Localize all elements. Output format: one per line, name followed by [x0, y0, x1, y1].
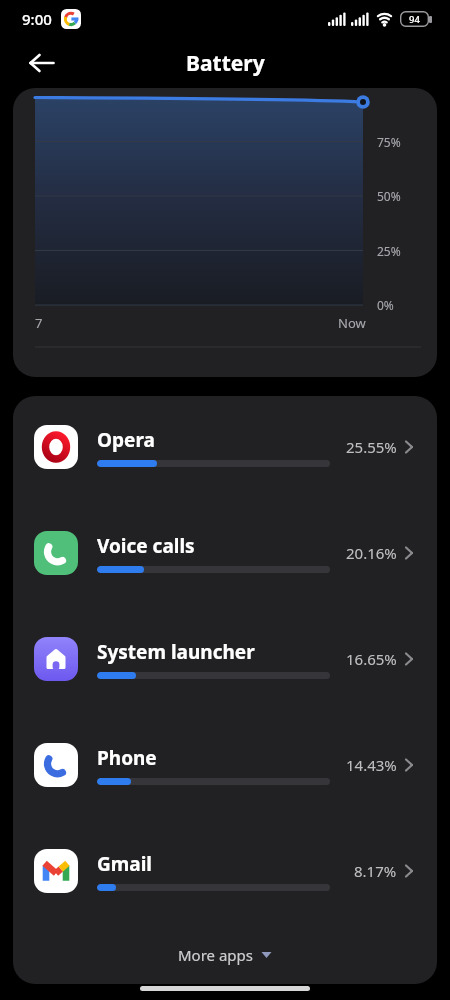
button[interactable]: More apps — [13, 926, 437, 984]
staticText: Voice calls — [97, 533, 195, 559]
button[interactable]: Phone — [13, 714, 437, 820]
staticText: Phone — [97, 745, 157, 771]
staticText: Now — [338, 314, 366, 332]
staticText: 50% — [377, 188, 401, 204]
staticText: System launcher — [97, 639, 255, 665]
staticText: 94 — [409, 13, 420, 26]
staticText: 25.55% — [346, 437, 397, 457]
staticText: 25% — [377, 243, 401, 259]
staticText: Gmail — [97, 851, 153, 877]
button[interactable] — [22, 43, 62, 83]
staticText: 0% — [377, 297, 394, 313]
staticText: 20.16% — [346, 543, 397, 563]
button[interactable]: Gmail — [13, 820, 437, 926]
staticText: 14.43% — [346, 755, 397, 775]
button[interactable]: Voice calls — [13, 502, 437, 608]
staticText: 9:00 — [22, 9, 52, 29]
staticText: 16.65% — [346, 649, 397, 669]
staticText: Battery — [186, 49, 265, 78]
staticText: 75% — [377, 134, 401, 150]
staticText: More apps — [178, 945, 253, 965]
staticText: Opera — [97, 427, 155, 453]
staticText: 8.17% — [354, 861, 397, 881]
button[interactable]: Opera — [13, 396, 437, 502]
staticText: 7 — [35, 314, 43, 332]
button[interactable]: System launcher — [13, 608, 437, 714]
